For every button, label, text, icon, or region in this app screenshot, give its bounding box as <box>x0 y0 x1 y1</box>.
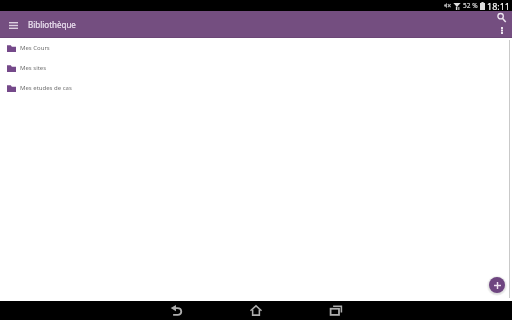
button[interactable]: Mes sites <box>0 58 512 78</box>
button[interactable]: Mes Cours <box>0 38 512 58</box>
staticText: 18:11 <box>487 0 511 11</box>
staticText: Mes sites <box>20 64 47 72</box>
button[interactable]: Mes etudes de cas <box>0 78 512 98</box>
button[interactable]: Add <box>489 277 505 293</box>
button[interactable]: Search <box>496 12 507 23</box>
button[interactable]: Home <box>216 301 296 320</box>
button[interactable]: Navigation menu <box>6 18 20 32</box>
button[interactable]: Back <box>136 301 216 320</box>
staticText: Mes Cours <box>20 44 50 52</box>
staticText: Mes etudes de cas <box>20 84 72 92</box>
button[interactable]: Recent apps <box>296 301 376 320</box>
button[interactable]: More options <box>496 23 507 37</box>
staticText: Bibliothèque <box>28 19 76 30</box>
staticText: 52 % <box>463 1 478 10</box>
